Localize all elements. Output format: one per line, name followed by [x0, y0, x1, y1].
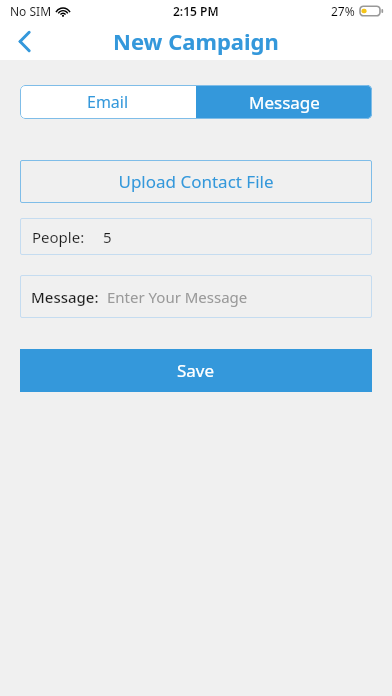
- button[interactable]: Message: [196, 85, 372, 119]
- staticText: 2:15 PM: [173, 3, 219, 19]
- button[interactable]: Upload Contact File: [20, 160, 372, 203]
- button[interactable]: People:: [20, 218, 372, 255]
- button[interactable]: Message:: [20, 275, 372, 318]
- staticText: Message:: [31, 287, 99, 307]
- staticText: Message: [249, 91, 320, 114]
- staticText: No SIM: [10, 3, 52, 19]
- staticText: 27%: [331, 3, 355, 19]
- staticText: Enter Your Message: [107, 287, 248, 307]
- staticText: People:: [32, 227, 85, 247]
- button[interactable]: Save: [20, 349, 372, 392]
- button[interactable]: Email: [20, 85, 196, 119]
- staticText: New Campaign: [113, 26, 279, 56]
- button[interactable]: Back: [4, 22, 44, 60]
- staticText: Email: [87, 91, 129, 113]
- staticText: Save: [177, 359, 215, 382]
- staticText: 5: [103, 227, 112, 247]
- staticText: Upload Contact File: [118, 170, 274, 193]
